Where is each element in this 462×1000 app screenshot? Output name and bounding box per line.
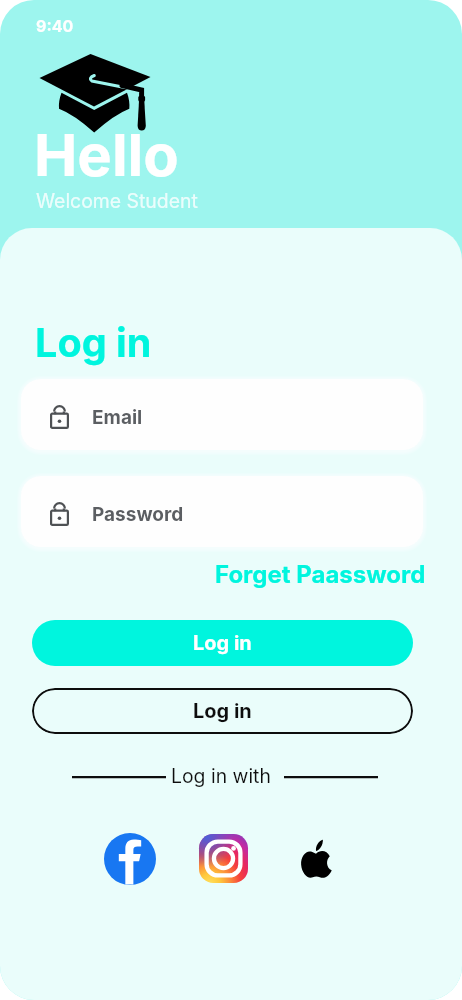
button[interactable]: Log in with Facebook: [104, 833, 156, 885]
staticText: Log in with: [171, 764, 271, 787]
button[interactable]: Log in: [32, 620, 413, 666]
staticText: Email: [92, 406, 143, 429]
button[interactable]: Password: [21, 476, 423, 547]
staticText: 9:40: [36, 16, 74, 35]
staticText: Hello: [34, 120, 179, 190]
staticText: Log in: [193, 699, 252, 723]
staticText: Password: [92, 503, 184, 526]
button[interactable]: Log in: [32, 688, 413, 734]
button[interactable]: Email: [21, 379, 423, 450]
staticText: Welcome Student: [36, 189, 198, 212]
button[interactable]: Forget Paassword: [215, 560, 426, 589]
button[interactable]: Log in with Apple: [300, 839, 332, 878]
staticText: Log in: [193, 631, 252, 655]
staticText: Log in: [35, 319, 152, 367]
button[interactable]: Log in with Instagram: [199, 834, 248, 883]
staticText: Forget Paassword: [215, 560, 426, 589]
